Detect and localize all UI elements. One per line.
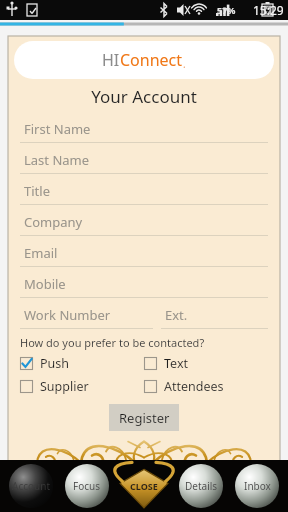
staticText: Details [185,479,218,493]
button[interactable]: Inbox [233,462,281,510]
staticText: Last Name [24,151,90,169]
staticText: Focus [73,479,101,493]
staticText: Text [164,355,189,372]
staticText: Inbox [244,479,271,493]
staticText: Work Number [24,306,111,324]
staticText: First Name [24,120,91,138]
button[interactable]: Company [20,209,268,240]
staticText: How do you prefer to be contacted? [20,335,205,350]
staticText: Supplier [40,378,89,395]
button[interactable]: Account [7,462,55,510]
staticText: Attendees [164,378,224,395]
button[interactable]: Close [118,460,170,512]
staticText: CLOSE [130,480,158,492]
button[interactable]: Supplier [20,378,144,395]
staticText: Company [24,213,83,231]
button[interactable]: Work Number [20,302,153,333]
staticText: 57% [217,4,236,16]
button[interactable]: Text [144,355,268,372]
staticText: Push [40,355,70,372]
button[interactable]: Last Name [20,147,268,178]
button[interactable]: Register [109,404,179,431]
staticText: Email [24,244,58,262]
staticText: Your Account [8,85,280,108]
staticText: Title [24,182,50,200]
staticText: Ext. [165,306,188,324]
button[interactable]: Attendees [144,378,268,395]
staticText: Connect [120,49,183,71]
staticText: Mobile [24,275,66,293]
button[interactable]: Focus [63,462,111,510]
staticText: Register [119,409,170,427]
staticText: 15:29 [253,2,284,18]
button[interactable]: Email [20,240,268,271]
button[interactable]: Details [177,462,225,510]
button[interactable]: First Name [20,116,268,147]
button[interactable]: Push [20,355,144,372]
button[interactable]: Title [20,178,268,209]
button[interactable]: Ext. [161,302,268,333]
staticText: HI [102,49,120,71]
staticText: Account [12,479,51,493]
staticText: . [183,57,186,71]
button[interactable]: Mobile [20,271,268,302]
